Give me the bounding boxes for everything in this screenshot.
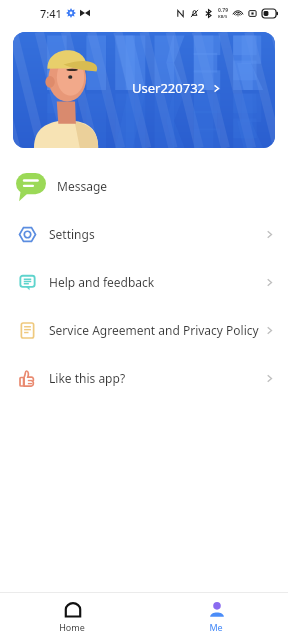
button[interactable]: Help and feedback (0, 258, 288, 306)
staticText: KB/S (218, 14, 228, 19)
staticText: 0.79 (218, 7, 228, 14)
staticText: Me (209, 621, 223, 633)
button[interactable]: Message (0, 162, 288, 210)
other: Home (64, 601, 82, 619)
staticText: Settings (49, 226, 95, 242)
button[interactable]: Service Agreement and Privacy Policy (0, 306, 288, 354)
staticText: 7:41 (40, 6, 62, 21)
staticText: Service Agreement and Privacy Policy (49, 322, 259, 338)
button[interactable]: User220732 (13, 32, 275, 148)
button[interactable]: Me (144, 595, 288, 638)
staticText: Like this app? (49, 370, 126, 386)
button[interactable]: Like this app? (0, 354, 288, 402)
staticText: Help and feedback (49, 274, 155, 290)
button[interactable]: Settings (0, 210, 288, 258)
staticText: Message (57, 178, 108, 194)
other: Me (208, 601, 226, 619)
staticText: User220732 (132, 79, 206, 97)
staticText: Home (59, 621, 85, 633)
button[interactable]: Home (0, 595, 144, 638)
